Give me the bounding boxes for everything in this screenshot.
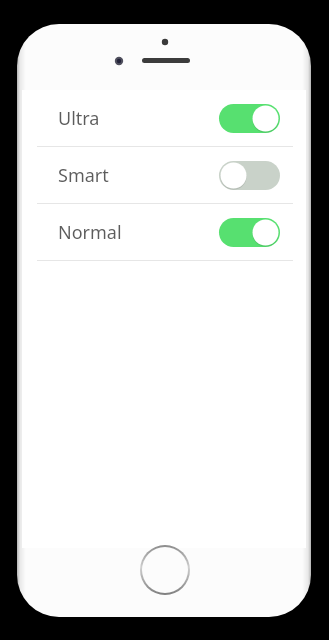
button[interactable]: Ultra <box>37 90 293 146</box>
staticText: Smart <box>58 163 109 188</box>
button[interactable]: Home <box>140 545 190 595</box>
staticText: Normal <box>58 220 122 245</box>
other: Smart off <box>219 161 280 190</box>
staticText: Ultra <box>58 106 100 131</box>
button[interactable]: Smart <box>37 147 293 203</box>
other: Ultra on <box>219 104 280 133</box>
button[interactable]: Normal <box>37 204 293 260</box>
other: Normal on <box>219 218 280 247</box>
